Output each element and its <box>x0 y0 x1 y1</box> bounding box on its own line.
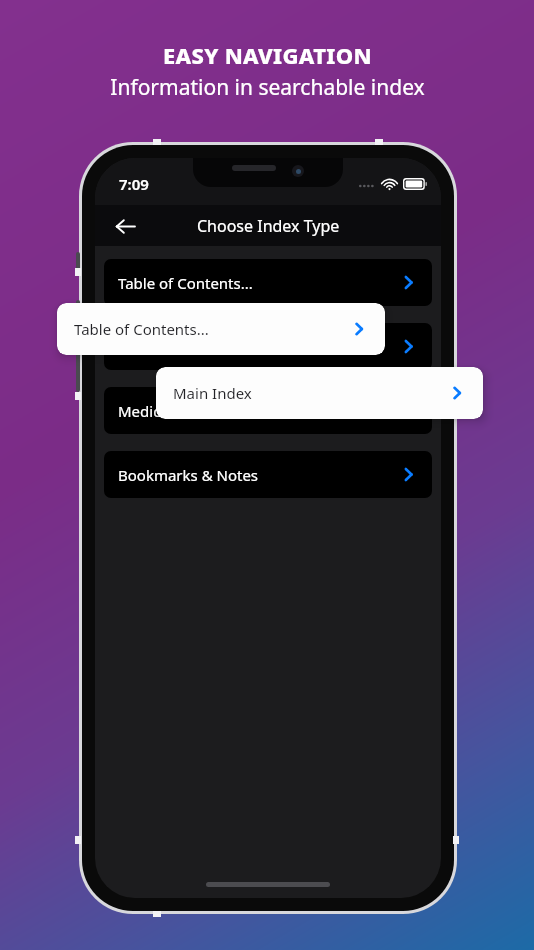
staticText: Table of Contents... <box>74 319 209 339</box>
staticText: Information in searchable index <box>110 73 425 102</box>
button[interactable]: Table of Contents... <box>57 303 385 355</box>
button[interactable]: Bookmarks & Notes <box>104 451 432 498</box>
staticText: Main Index <box>173 383 252 403</box>
staticText: Bookmarks & Notes <box>118 465 259 485</box>
staticText: EASY NAVIGATION <box>163 40 372 70</box>
button[interactable]: Table of Contents... <box>104 259 432 306</box>
staticText: Table of Contents... <box>118 273 253 293</box>
button[interactable]: Back <box>105 206 145 246</box>
staticText: Medical ... <box>118 401 189 421</box>
button[interactable]: Main Index <box>156 367 483 419</box>
staticText: Choose Index Type <box>197 215 340 237</box>
button[interactable]: Medical ... <box>104 387 432 434</box>
staticText: 7:09 <box>119 174 149 194</box>
button[interactable] <box>104 323 432 370</box>
